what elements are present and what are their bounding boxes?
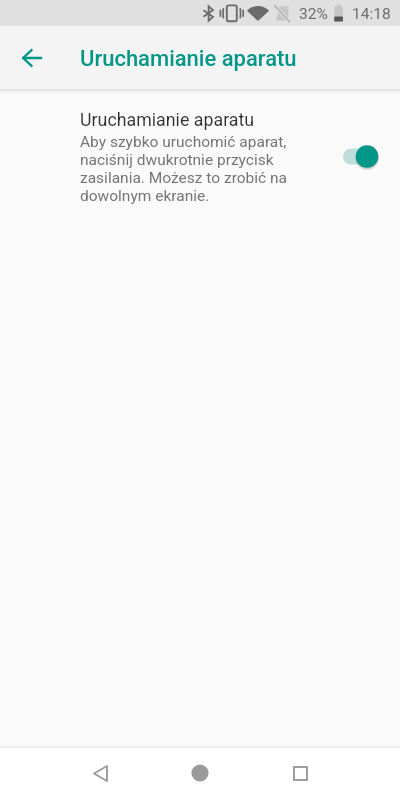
button[interactable]: Wstecz [78,751,122,795]
staticText: Uruchamianie aparatu [80,46,297,72]
button[interactable]: Back [11,38,51,78]
staticText: Uruchamianie aparatu [80,109,255,130]
button[interactable]: Włącz uruchamianie aparatu [338,138,390,174]
button[interactable]: Uruchamianie aparatu [0,94,400,216]
staticText: 32% [299,5,328,23]
button[interactable]: Ekran główny [178,751,222,795]
staticText: Aby szybko uruchomić aparat, naciśnij dw… [80,133,294,205]
staticText: 14:18 [352,5,391,23]
button[interactable]: Ostatnie aplikacje [278,751,322,795]
